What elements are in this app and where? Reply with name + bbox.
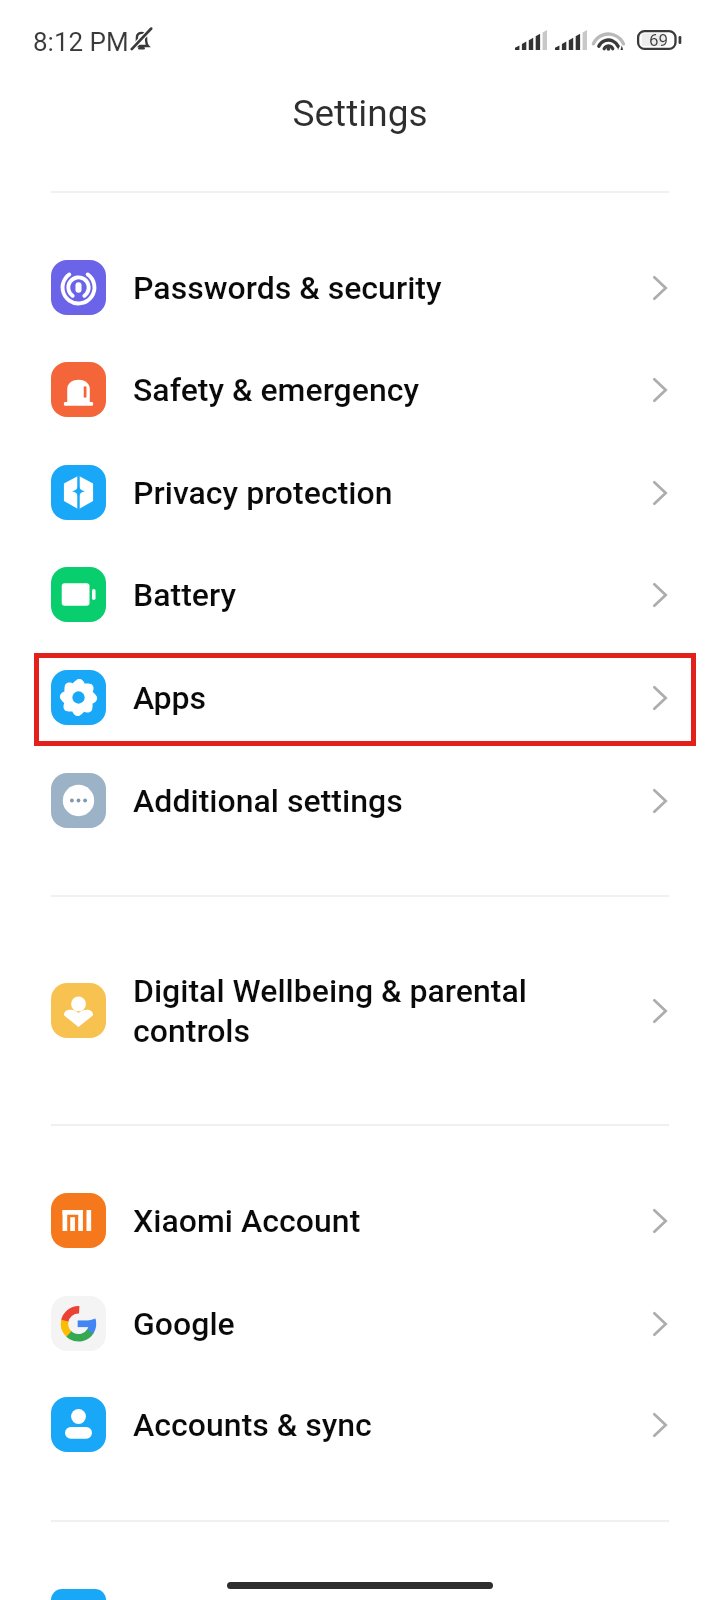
button[interactable]: Apps (0, 646, 720, 749)
button[interactable]: Passwords and security (0, 236, 720, 339)
staticText: Digital Wellbeing & parental controls (133, 972, 603, 1050)
staticText: Passwords & security (133, 269, 603, 307)
staticText: Battery (133, 576, 603, 614)
staticText: Safety & emergency (133, 371, 603, 409)
button[interactable]: Xiaomi Account (0, 1169, 720, 1272)
staticText: Accounts & sync (133, 1406, 603, 1444)
staticText: 8:12 PM (33, 27, 129, 57)
staticText: 69 (649, 30, 669, 50)
staticText: Apps (133, 679, 603, 717)
button[interactable]: Safety and emergency (0, 338, 720, 441)
button[interactable]: Battery (0, 543, 720, 646)
staticText: Google (133, 1305, 603, 1343)
button[interactable]: Additional settings (0, 749, 720, 852)
button[interactable]: Google (0, 1272, 720, 1375)
staticText: Additional settings (133, 782, 603, 820)
staticText: Xiaomi Account (133, 1202, 603, 1240)
staticText: Privacy protection (133, 474, 603, 512)
button[interactable]: Accounts and sync (0, 1373, 720, 1476)
button[interactable]: Privacy protection (0, 441, 720, 544)
staticText: Settings (292, 92, 428, 135)
button[interactable]: Digital Wellbeing (0, 959, 720, 1062)
